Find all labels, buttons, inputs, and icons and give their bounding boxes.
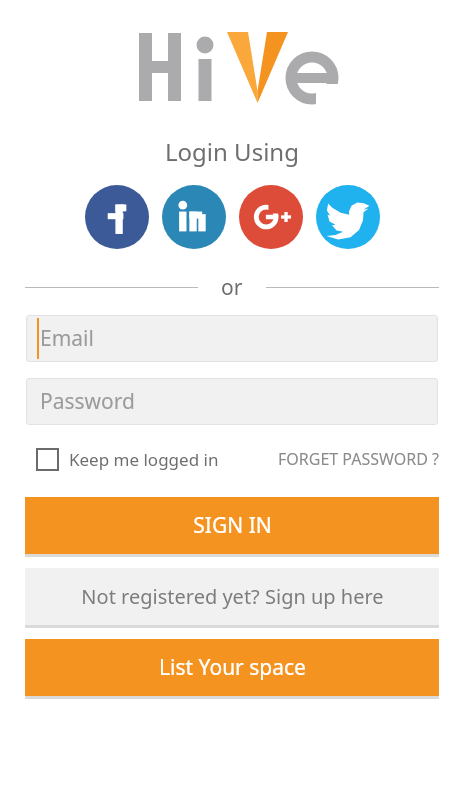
staticText: SIGN IN: [193, 511, 272, 540]
button[interactable]: Password: [26, 378, 438, 425]
staticText: Keep me logged in: [69, 448, 219, 471]
button[interactable]: Sign in with LinkedIn: [162, 185, 226, 249]
staticText: FORGET PASSWORD ?: [278, 448, 439, 470]
button[interactable]: Sign in with Facebook: [85, 185, 149, 249]
button[interactable]: Sign in with Google Plus: [239, 185, 303, 249]
staticText: Login Using: [165, 135, 299, 168]
button[interactable]: List Your space: [25, 639, 439, 696]
button[interactable]: Keep me logged in: [25, 448, 223, 471]
staticText: or: [221, 273, 243, 302]
staticText: List Your space: [159, 653, 306, 682]
button[interactable]: FORGET PASSWORD ?: [274, 448, 439, 470]
staticText: Email: [40, 324, 94, 353]
button[interactable]: Not registered yet? Sign up here: [25, 568, 439, 625]
button[interactable]: Email: [26, 315, 438, 362]
button[interactable]: SIGN IN: [25, 497, 439, 554]
staticText: Password: [40, 387, 135, 416]
staticText: Not registered yet? Sign up here: [81, 583, 384, 610]
button[interactable]: Sign in with Twitter: [316, 185, 380, 249]
